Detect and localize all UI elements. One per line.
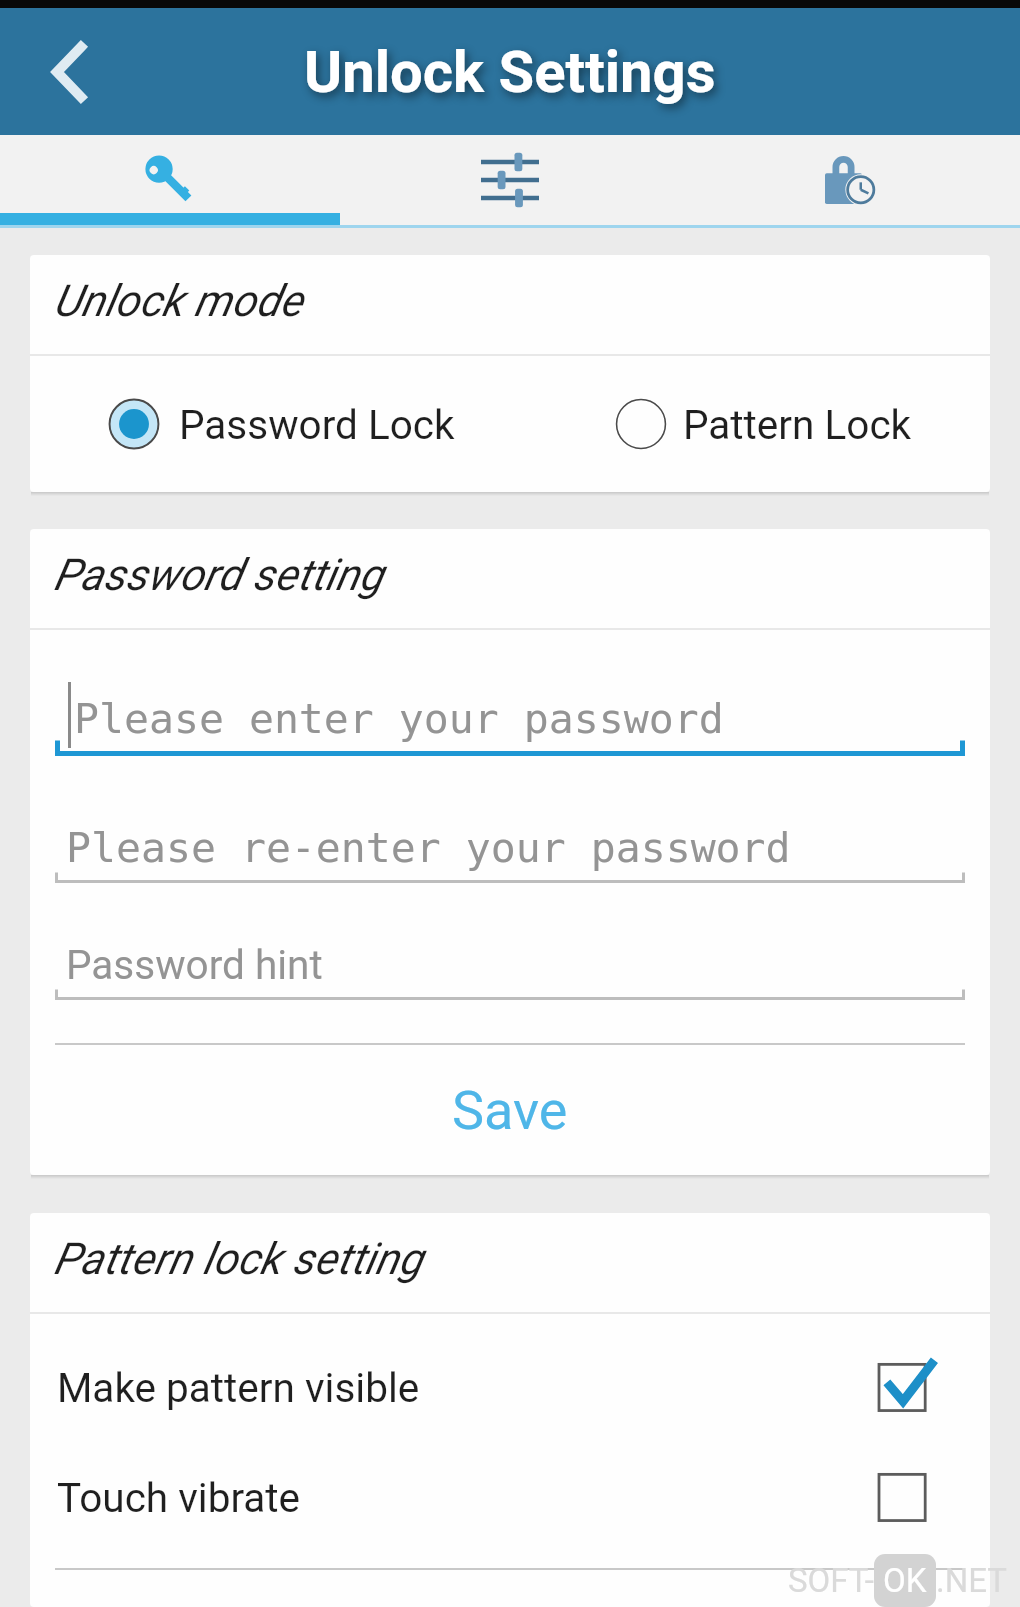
button[interactable]: Back: [34, 22, 104, 122]
staticText: Touch vibrate: [57, 1474, 879, 1521]
staticText: Unlock mode: [53, 275, 303, 327]
staticText: Pattern Lock: [683, 401, 912, 448]
button[interactable]: Password unlock: [0, 147, 340, 213]
button[interactable]: Touch vibrate: [30, 1442, 990, 1552]
staticText: Save: [452, 1079, 568, 1142]
button[interactable]: Make pattern visible: [30, 1332, 990, 1442]
staticText: Password setting: [53, 549, 383, 601]
button[interactable]: Settings: [340, 147, 680, 213]
staticText: .NET: [936, 1561, 1008, 1600]
staticText: Please enter your password: [74, 694, 724, 742]
staticText: Pattern lock setting: [53, 1233, 423, 1285]
staticText: Password Lock: [179, 401, 455, 448]
staticText: OK: [883, 1561, 927, 1600]
button[interactable]: Pattern Lock: [510, 356, 990, 492]
staticText: Password hint: [66, 941, 323, 988]
staticText: Make pattern visible: [57, 1364, 879, 1411]
staticText: SOFT-: [788, 1561, 874, 1600]
staticText: Unlock Settings: [304, 38, 716, 106]
button[interactable]: Please enter your password: [55, 685, 965, 765]
button[interactable]: Lock timer: [680, 147, 1020, 213]
button[interactable]: Password hint: [55, 931, 965, 1011]
button[interactable]: Please re-enter your password: [55, 814, 965, 894]
button[interactable]: Save: [30, 1045, 990, 1175]
staticText: Please re-enter your password: [66, 823, 791, 871]
button[interactable]: Password Lock: [30, 356, 510, 492]
